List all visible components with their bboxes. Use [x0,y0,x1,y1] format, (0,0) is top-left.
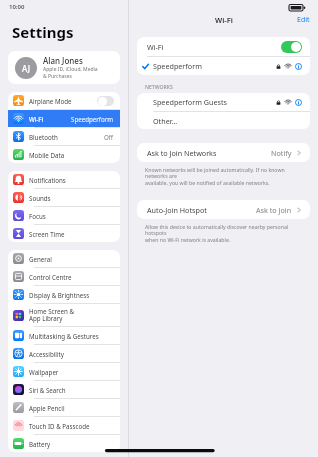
staticText: Known networks will be joined automatica… [145,166,308,187]
staticText: Wallpaper [29,368,114,376]
staticText: Settings [12,22,74,42]
staticText: 10:00 [9,3,25,11]
staticText: Touch ID & Passcode [29,422,114,430]
staticText: Off [104,133,114,141]
other: More info [295,63,302,70]
staticText: Bluetooth [29,133,104,141]
button[interactable]: Speedperform [137,57,310,75]
staticText: Ask to Join [256,205,292,215]
button[interactable]: Notifications [8,171,120,188]
button[interactable]: Wallpaper [8,363,120,380]
button[interactable]: Ask to Join Networks [137,143,310,162]
button[interactable]: Display & Brightness [8,286,120,303]
staticText: Siri & Search [29,386,114,394]
button[interactable]: Wi-Fi [8,110,120,127]
button[interactable]: Screen Time [8,225,120,242]
button[interactable]: Multitasking & Gestures [8,327,120,344]
button[interactable]: Apple Pencil [8,399,120,416]
staticText: Wi-Fi [29,115,71,123]
button[interactable]: Touch ID & Passcode [8,417,120,434]
button[interactable]: Home Screen & App Library [8,304,120,326]
staticText: Battery [29,440,114,448]
staticText: Speedperform [153,61,276,71]
staticText: Speedperform [71,115,114,123]
staticText: Mobile Data [29,151,114,159]
other: Airplane Mode toggle [97,96,114,106]
staticText: Auto-Join Hotspot [147,205,256,215]
staticText: Home Screen & App Library [29,307,114,323]
button[interactable]: Speedperform Guests [137,93,310,111]
button[interactable]: AJ [8,51,120,84]
staticText: NETWORKS [145,83,173,90]
staticText: Apple Pencil [29,404,114,412]
staticText: Apple ID, iCloud, Media & Purchases [43,66,98,80]
staticText: Speedperform Guests [153,97,276,107]
button[interactable]: Wi-Fi [137,37,310,56]
button[interactable]: Bluetooth [8,128,120,145]
button[interactable]: Mobile Data [8,146,120,163]
staticText: Alan Jones [43,55,83,66]
staticText: Sounds [29,194,114,202]
staticText: Wi-Fi [147,42,281,52]
button[interactable]: Focus [8,207,120,224]
button[interactable]: Siri & Search [8,381,120,398]
button[interactable]: Airplane Mode [8,92,120,109]
staticText: Wi-Fi [215,15,233,25]
other: More info [295,99,302,106]
button[interactable]: Battery [8,435,120,452]
button[interactable]: Other... [137,112,310,129]
staticText: AJ [22,63,30,74]
button[interactable]: Auto-Join Hotspot [137,200,310,219]
staticText: Multitasking & Gestures [29,332,114,340]
button[interactable]: Sounds [8,189,120,206]
button[interactable]: General [8,250,120,267]
staticText: Accessibility [29,350,114,358]
button[interactable]: Control Centre [8,268,120,285]
button[interactable]: Accessibility [8,345,120,362]
staticText: Screen Time [29,230,114,238]
staticText: Notifications [29,176,114,184]
staticText: Airplane Mode [29,97,97,105]
staticText: Allow this device to automatically disco… [145,223,308,244]
staticText: General [29,255,114,263]
other: Wi-Fi on [281,41,302,53]
staticText: Display & Brightness [29,291,114,299]
staticText: Edit [297,15,310,25]
staticText: Notify [271,148,292,158]
button[interactable]: Edit [289,12,318,28]
staticText: Focus [29,212,114,220]
staticText: Other... [153,116,178,126]
staticText: Ask to Join Networks [147,148,271,158]
staticText: Control Centre [29,273,114,281]
